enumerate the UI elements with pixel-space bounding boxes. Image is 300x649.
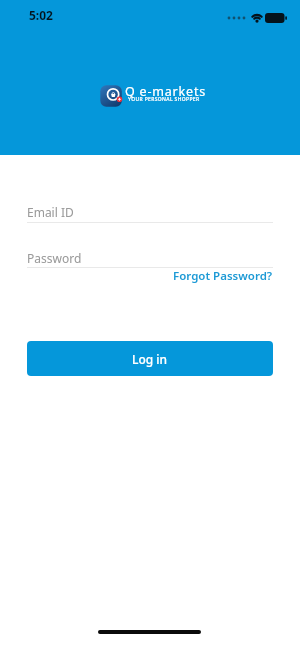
staticText: Forgot Password? xyxy=(173,268,273,284)
button[interactable]: Password xyxy=(27,250,82,266)
staticText: Email ID xyxy=(27,204,74,220)
staticText: Password xyxy=(27,250,82,266)
staticText: 5:02 xyxy=(29,7,53,23)
button[interactable]: Forgot Password? xyxy=(173,268,273,284)
staticText: YOUR PERSONAL SHOPPER xyxy=(128,96,200,103)
staticText: Q e-markets xyxy=(125,83,206,100)
button[interactable]: Email ID xyxy=(27,204,74,220)
button[interactable]: Log in xyxy=(27,341,273,376)
staticText: Log in xyxy=(132,351,168,367)
